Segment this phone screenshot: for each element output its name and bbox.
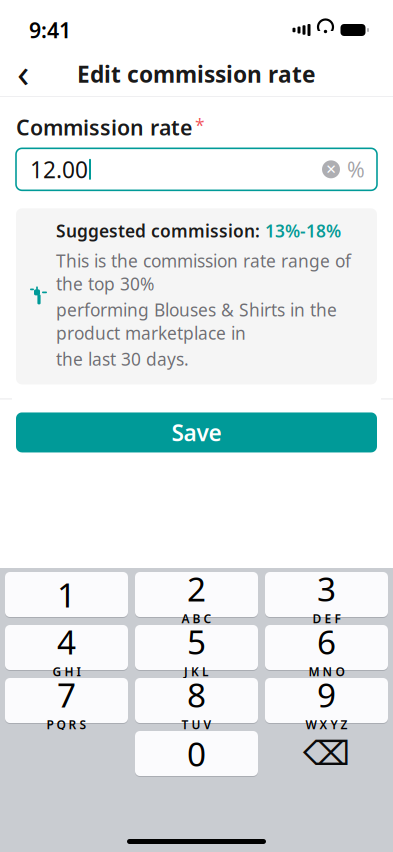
staticText: J K L <box>184 664 209 680</box>
staticText: Edit commission rate <box>77 59 316 89</box>
staticText: 1 <box>57 572 76 617</box>
button[interactable]: Clear text <box>318 156 344 182</box>
button[interactable]: Delete <box>265 730 388 777</box>
staticText: Commission rate <box>16 113 192 141</box>
button[interactable]: Save <box>16 412 377 452</box>
staticText: A B C <box>181 611 211 627</box>
staticText: the last 30 days. <box>56 347 189 370</box>
staticText: ✕ <box>325 162 336 177</box>
staticText: G H I <box>52 664 80 680</box>
button[interactable]: 2 <box>135 571 258 618</box>
button[interactable]: Back <box>0 52 46 96</box>
button[interactable]: 7 <box>5 677 128 724</box>
staticText: % <box>347 155 365 183</box>
staticText: performing Blouses & Shirts in the produ… <box>56 298 337 344</box>
staticText: 13%-18% <box>265 219 341 242</box>
staticText: 5 <box>187 619 206 664</box>
staticText: This is the commission rate range of the… <box>56 249 351 295</box>
button[interactable]: 0 <box>135 730 258 777</box>
staticText: 6 <box>317 619 336 664</box>
staticText: Save <box>171 417 221 447</box>
staticText: ⌫ <box>303 735 350 772</box>
staticText: M N O <box>308 664 344 680</box>
button[interactable]: 1 <box>5 571 128 618</box>
staticText: 7 <box>57 672 76 717</box>
staticText: 8 <box>187 672 206 717</box>
staticText: Suggested commission: <box>56 219 265 242</box>
staticText: W X Y Z <box>305 717 347 733</box>
staticText: 4 <box>57 619 76 664</box>
staticText: P Q R S <box>46 717 86 733</box>
button[interactable]: 3 <box>265 571 388 618</box>
button[interactable]: 4 <box>5 624 128 671</box>
staticText: D E F <box>312 611 340 627</box>
button[interactable]: 5 <box>135 624 258 671</box>
staticText: 2 <box>187 566 206 611</box>
staticText: * <box>195 114 205 137</box>
staticText: 3 <box>317 566 336 611</box>
staticText: 9:41 <box>29 16 71 44</box>
button[interactable]: 8 <box>135 677 258 724</box>
button[interactable]: 9 <box>265 677 388 724</box>
staticText: 12.00 <box>30 154 88 184</box>
button[interactable]: 6 <box>265 624 388 671</box>
staticText: 9 <box>317 672 336 717</box>
staticText: 0 <box>187 731 206 776</box>
staticText: ‹ <box>17 45 29 98</box>
staticText: T U V <box>181 717 211 733</box>
